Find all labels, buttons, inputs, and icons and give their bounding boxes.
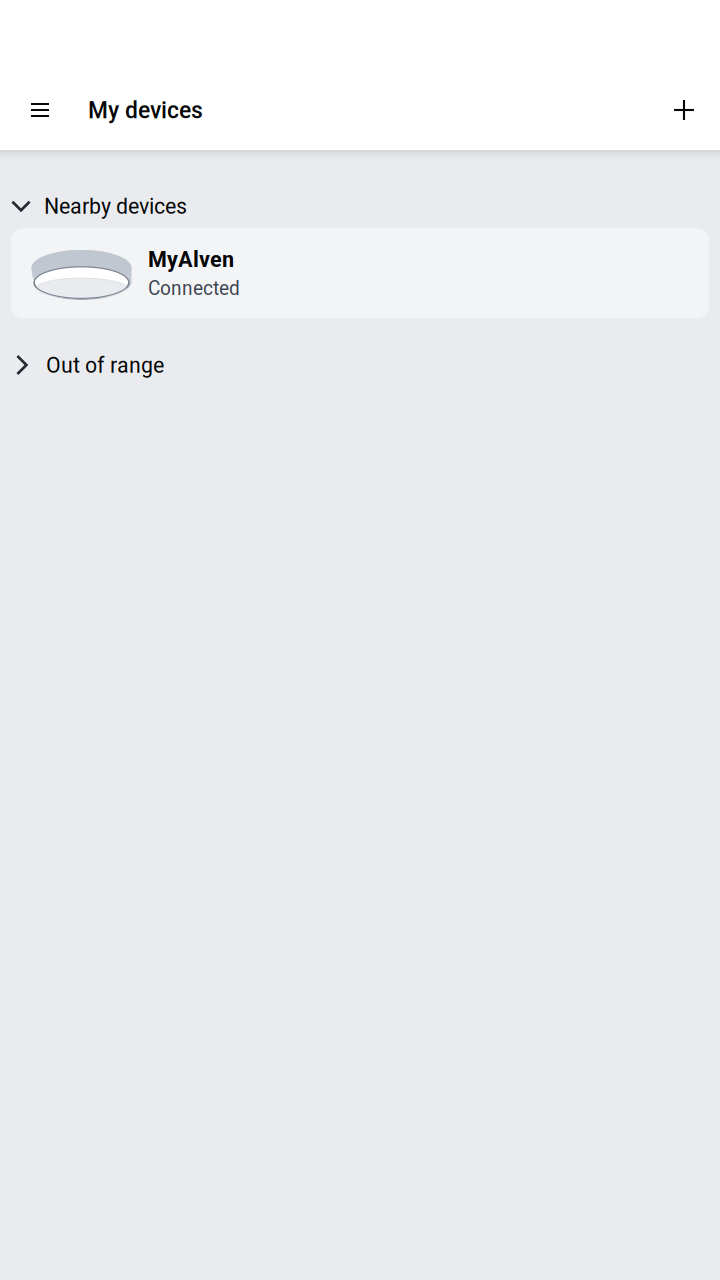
staticText: MyAlven <box>148 246 234 273</box>
staticText: Nearby devices <box>44 193 187 219</box>
button[interactable]: Out of range <box>0 340 720 390</box>
button[interactable]: Menu <box>16 86 64 134</box>
button[interactable]: Nearby devices <box>0 160 720 228</box>
button[interactable]: MyAlven <box>11 228 709 318</box>
staticText: Connected <box>148 277 240 300</box>
staticText: My devices <box>88 96 203 124</box>
staticText: Out of range <box>46 352 164 378</box>
button[interactable]: Add device <box>660 86 708 134</box>
